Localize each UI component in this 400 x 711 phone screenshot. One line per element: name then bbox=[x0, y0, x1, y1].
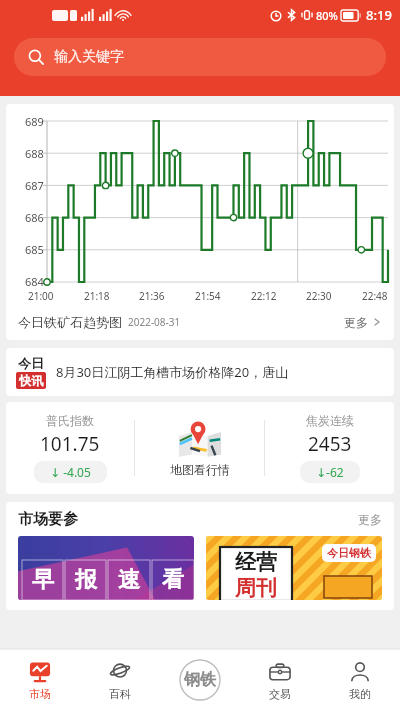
staticText: 22:12 bbox=[251, 289, 277, 303]
staticText: 21:54 bbox=[195, 289, 221, 303]
staticText: 80% bbox=[316, 8, 338, 23]
staticText: ↓-62 bbox=[316, 464, 344, 480]
staticText: 今日 bbox=[18, 355, 44, 371]
staticText: 8月30日江阴工角槽市场价格降20，唐山 bbox=[56, 363, 289, 381]
button[interactable]: 市场 bbox=[0, 649, 80, 711]
staticText: 速 bbox=[118, 566, 140, 594]
staticText: 684 bbox=[25, 274, 44, 289]
staticText: 钢铁 bbox=[184, 670, 216, 690]
staticText: 报 bbox=[75, 566, 97, 594]
staticText: 输入关键字 bbox=[54, 48, 124, 66]
staticText: 688 bbox=[25, 146, 44, 161]
staticText: 8:19 bbox=[366, 6, 392, 24]
button[interactable]: 经营 bbox=[206, 536, 382, 600]
staticText: 交易 bbox=[269, 687, 291, 701]
staticText: 2453 bbox=[308, 431, 352, 457]
staticText: 市场 bbox=[29, 687, 51, 701]
staticText: 早 bbox=[32, 566, 54, 594]
staticText: 21:00 bbox=[28, 289, 54, 303]
staticText: 689 bbox=[25, 114, 44, 129]
staticText: 今日铁矿石趋势图 bbox=[18, 314, 122, 330]
staticText: 更多 bbox=[358, 512, 382, 527]
staticText: 685 bbox=[25, 242, 44, 257]
staticText: ↓ -4.05 bbox=[50, 464, 91, 480]
button[interactable]: 早 bbox=[18, 536, 194, 600]
staticText: 看 bbox=[162, 566, 184, 594]
button[interactable]: 交易 bbox=[240, 649, 320, 711]
button[interactable]: 百科 bbox=[80, 649, 160, 711]
staticText: 21:18 bbox=[84, 289, 110, 303]
button[interactable]: 普氏指数 bbox=[6, 402, 134, 494]
staticText: 687 bbox=[25, 178, 44, 193]
staticText: 686 bbox=[25, 210, 44, 225]
staticText: 22:30 bbox=[306, 289, 332, 303]
staticText: 我的 bbox=[349, 687, 371, 701]
button[interactable]: 今日 bbox=[6, 348, 394, 396]
staticText: 地图看行情 bbox=[170, 462, 230, 477]
button[interactable]: 更多 bbox=[358, 512, 382, 527]
staticText: 21:36 bbox=[139, 289, 165, 303]
staticText: 焦炭连续 bbox=[306, 413, 354, 428]
staticText: 百科 bbox=[109, 687, 131, 701]
staticText: 普氏指数 bbox=[46, 413, 94, 428]
button[interactable]: 地图看行情 bbox=[135, 402, 264, 494]
staticText: 市场要参 bbox=[18, 510, 78, 529]
button[interactable]: 输入关键字 bbox=[14, 38, 386, 76]
staticText: 快讯 bbox=[19, 373, 43, 388]
staticText: 22:48 bbox=[362, 289, 388, 303]
button[interactable]: 焦炭连续 bbox=[265, 402, 394, 494]
staticText: 经营 bbox=[235, 549, 277, 575]
button[interactable]: 钢铁 bbox=[160, 649, 240, 711]
staticText: 更多 bbox=[344, 315, 368, 330]
button[interactable]: 我的 bbox=[320, 649, 400, 711]
staticText: 101.75 bbox=[40, 431, 100, 457]
button[interactable]: 今日铁矿石趋势图 bbox=[6, 304, 394, 340]
staticText: 周刊 bbox=[235, 575, 277, 600]
staticText: 今日钢铁 bbox=[327, 546, 371, 560]
staticText: 2022-08-31 bbox=[128, 315, 181, 329]
